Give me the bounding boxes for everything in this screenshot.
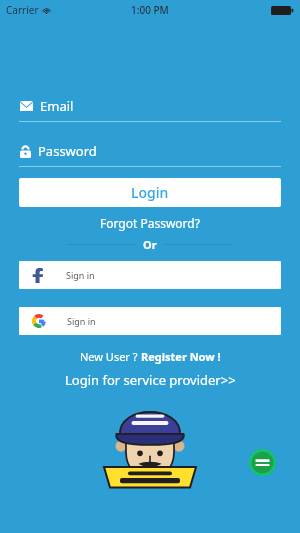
staticText: Password: [38, 142, 97, 160]
button[interactable]: Login: [19, 178, 281, 207]
staticText: New User ?: [80, 349, 141, 364]
staticText: Login for service provider>>: [65, 371, 236, 389]
button[interactable]: Sign in: [19, 307, 281, 335]
button[interactable]: Sign in: [19, 261, 281, 289]
button[interactable]: Password: [19, 141, 281, 167]
button[interactable]: New User ?: [0, 349, 300, 364]
staticText: Carrier: [6, 3, 39, 17]
staticText: Email: [40, 97, 74, 115]
button[interactable]: Email: [19, 96, 281, 122]
button[interactable]: Login for service provider>>: [0, 371, 300, 389]
staticText: Login: [131, 183, 169, 202]
staticText: Sign in: [66, 269, 95, 281]
staticText: 1:00 PM: [131, 3, 169, 17]
button[interactable]: Language Arabic: [249, 449, 276, 476]
staticText: Register Now !: [141, 349, 221, 364]
staticText: Sign in: [67, 315, 96, 327]
button[interactable]: Forgot Password?: [0, 215, 300, 231]
staticText: Or: [143, 237, 157, 251]
staticText: Forgot Password?: [100, 215, 200, 231]
